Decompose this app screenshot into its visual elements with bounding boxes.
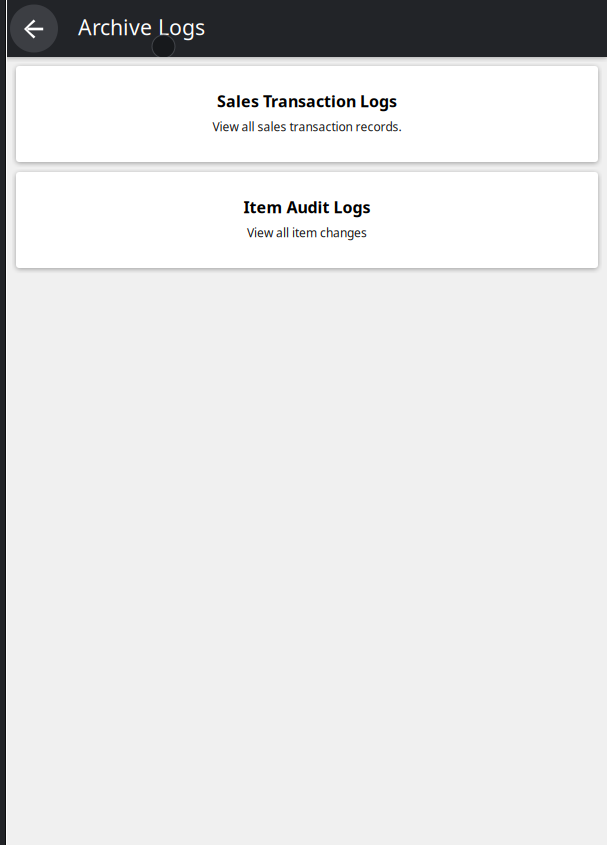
staticText: View all item changes [247, 225, 367, 241]
staticText: Item Audit Logs [243, 196, 370, 218]
staticText: Sales Transaction Logs [217, 90, 397, 112]
button[interactable]: Back [10, 4, 58, 52]
button[interactable]: Item Audit Logs [16, 172, 598, 268]
button[interactable]: Sales Transaction Logs [16, 66, 598, 162]
staticText: Archive Logs [78, 13, 205, 41]
staticText: View all sales transaction records. [212, 119, 401, 135]
